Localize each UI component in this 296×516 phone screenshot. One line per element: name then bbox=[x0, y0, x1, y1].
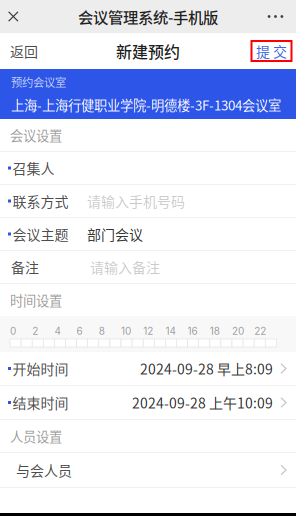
staticText: 结束时间 bbox=[12, 392, 68, 413]
staticText: 4 bbox=[54, 325, 60, 337]
staticText: 提 交 bbox=[256, 41, 287, 61]
staticText: 10 bbox=[121, 325, 131, 337]
button[interactable]: More options bbox=[256, 0, 296, 33]
staticText: 人员设置 bbox=[10, 426, 62, 446]
staticText: 22 bbox=[254, 325, 266, 337]
staticText: 2 bbox=[32, 325, 38, 337]
staticText: 会议设置 bbox=[10, 125, 62, 145]
staticText: 备注 bbox=[11, 257, 39, 277]
staticText: 开始时间 bbox=[12, 358, 68, 379]
staticText: 时间设置 bbox=[10, 290, 62, 310]
staticText: 新建预约 bbox=[116, 39, 180, 63]
staticText: 12 bbox=[143, 325, 153, 337]
button[interactable]: 会议主题 bbox=[0, 218, 296, 250]
staticText: 与会人员 bbox=[16, 460, 72, 480]
button[interactable]: Close bbox=[0, 0, 34, 33]
staticText: 请输入备注 bbox=[90, 257, 160, 277]
staticText: 18 bbox=[210, 325, 220, 337]
staticText: 召集人 bbox=[12, 158, 54, 178]
button[interactable]: 结束时间 bbox=[0, 386, 296, 419]
button[interactable]: 预约会议室 bbox=[0, 69, 296, 119]
button[interactable]: 联系方式 bbox=[0, 185, 296, 217]
staticText: 部门会议 bbox=[87, 224, 143, 244]
staticText: 2024-09-28 早上8:09 bbox=[140, 358, 273, 379]
button[interactable]: 提 交 bbox=[247, 33, 296, 69]
staticText: 上海-上海行健职业学院-明德楼-3F-1304会议室 bbox=[11, 95, 281, 114]
staticText: 16 bbox=[188, 325, 198, 337]
staticText: 会议管理系统-手机版 bbox=[78, 5, 218, 28]
staticText: 会议主题 bbox=[12, 224, 68, 244]
staticText: 14 bbox=[165, 325, 175, 337]
staticText: 返回 bbox=[10, 41, 38, 61]
button[interactable]: 备注 bbox=[0, 251, 296, 283]
staticText: 8 bbox=[99, 325, 105, 337]
button[interactable]: 召集人 bbox=[0, 152, 296, 184]
staticText: 请输入手机号码 bbox=[87, 191, 185, 211]
staticText: 20 bbox=[232, 325, 244, 337]
button[interactable]: 与会人员 bbox=[0, 453, 296, 487]
staticText: 2024-09-28 上午10:09 bbox=[132, 392, 273, 413]
staticText: 0 bbox=[10, 325, 16, 337]
button[interactable]: 返回 bbox=[0, 33, 52, 69]
staticText: 6 bbox=[77, 325, 83, 337]
staticText: 联系方式 bbox=[12, 191, 68, 211]
button[interactable]: 开始时间 bbox=[0, 352, 296, 385]
staticText: 预约会议室 bbox=[11, 74, 66, 90]
